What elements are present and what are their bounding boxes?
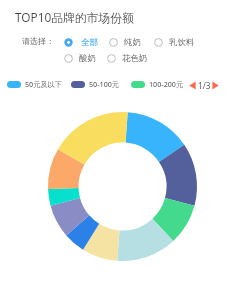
staticText: 50-100元 — [89, 79, 120, 89]
button[interactable]: 全部 — [64, 37, 98, 48]
button[interactable]: Previous page — [189, 81, 196, 90]
staticText: 酸奶 — [79, 53, 96, 64]
button[interactable]: 乳饮料 — [154, 37, 195, 48]
staticText: 花色奶 — [122, 53, 148, 64]
staticText: 50元及以下 — [25, 79, 62, 89]
staticText: TOP10品牌的市场份额 — [15, 9, 134, 25]
button[interactable]: 酸奶 — [64, 53, 96, 64]
button[interactable]: 纯奶 — [109, 37, 141, 48]
button[interactable]: 花色奶 — [107, 53, 148, 64]
staticText: 100-200元 — [149, 79, 184, 89]
staticText: 请选择： — [22, 36, 54, 46]
staticText: 乳饮料 — [169, 37, 195, 48]
staticText: 1/3 — [198, 80, 211, 91]
staticText: 全部 — [81, 37, 98, 48]
button[interactable]: Next page — [212, 81, 219, 90]
staticText: 纯奶 — [124, 37, 141, 48]
